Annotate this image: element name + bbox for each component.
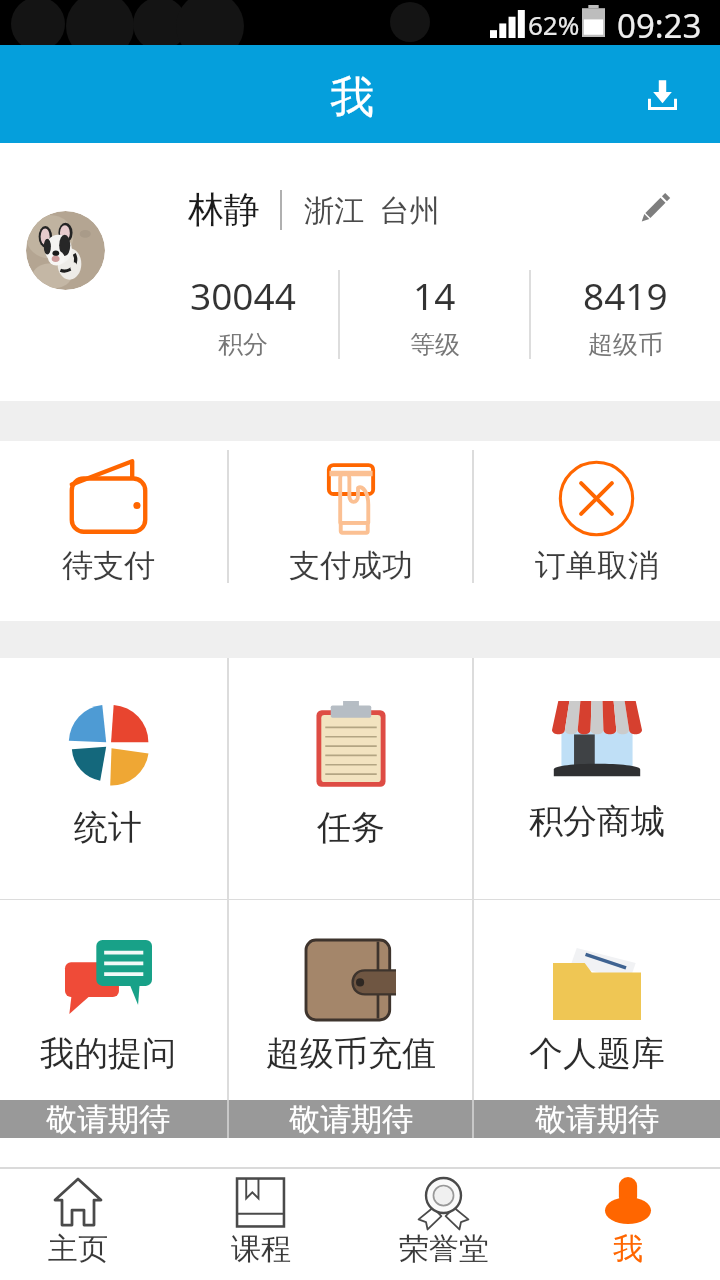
button[interactable]: 敬请期待 [0,1100,216,1138]
staticText: 订单取消 [535,546,659,585]
staticText: 积分 [218,329,268,360]
staticText: 任务 [317,806,385,849]
staticText: 敬请期待 [289,1100,413,1138]
staticText: 14 [413,270,456,320]
button[interactable]: 荣誉堂 [366,1169,521,1280]
button[interactable]: 我 [550,1169,705,1280]
staticText: 统计 [74,806,142,849]
button[interactable]: 30044 [148,270,338,370]
staticText: 敬请期待 [46,1100,170,1138]
button[interactable] [26,211,105,290]
staticText: 主页 [48,1230,108,1268]
button[interactable]: 主页 [0,1169,155,1280]
staticText: 62% [528,7,580,42]
staticText: 待支付 [62,546,155,585]
button[interactable]: Edit profile [624,180,684,240]
button[interactable]: Download [632,64,692,124]
button[interactable]: 我的提问 [0,900,216,1100]
staticText: 等级 [410,329,460,360]
button[interactable]: 统计 [0,658,216,899]
button[interactable]: 8419 [531,270,720,370]
staticText: 我的提问 [40,1032,176,1075]
staticText: 超级币充值 [266,1032,436,1075]
staticText: 积分商城 [529,800,665,843]
button[interactable]: 超级币充值 [228,900,473,1100]
button[interactable]: 14 [340,270,529,370]
staticText: 敬请期待 [535,1100,659,1138]
button[interactable]: 积分商城 [473,658,720,899]
staticText: 个人题库 [529,1032,665,1075]
staticText: 林静 [188,187,260,232]
button[interactable]: 敬请期待 [228,1100,473,1138]
staticText: 8419 [583,270,668,320]
button[interactable]: 待支付 [0,441,216,621]
button[interactable]: 课程 [183,1169,338,1280]
button[interactable]: 敬请期待 [473,1100,720,1138]
button[interactable]: 个人题库 [473,900,720,1100]
staticText: 支付成功 [289,546,413,585]
staticText: 我 [330,70,374,125]
staticText: 课程 [231,1230,291,1268]
button[interactable]: 任务 [228,658,473,899]
staticText: 30044 [190,270,296,320]
staticText: 我 [613,1230,643,1268]
staticText: 浙江 台州 [304,189,440,230]
button[interactable]: 支付成功 [228,441,473,621]
staticText: 荣誉堂 [399,1230,489,1268]
staticText: 09:23 [617,3,702,48]
button[interactable]: 订单取消 [473,441,720,621]
staticText: 超级币 [588,329,663,360]
